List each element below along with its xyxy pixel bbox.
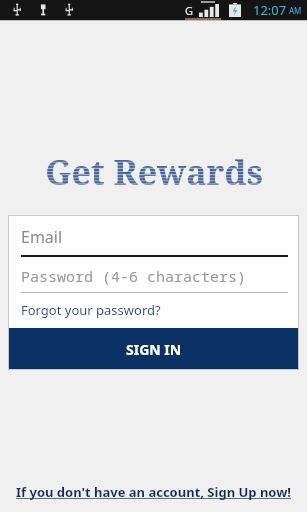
button[interactable]: Password (4-6 characters) — [8, 266, 299, 293]
staticText: If you don't have an account, Sign Up no… — [16, 483, 291, 501]
staticText: Forgot your password? — [21, 301, 161, 319]
staticText: AM — [289, 5, 302, 16]
button[interactable]: If you don't have an account, Sign Up no… — [0, 477, 307, 512]
staticText: Password (4-6 characters) — [21, 266, 247, 286]
staticText: 12:07 — [253, 1, 287, 19]
button[interactable]: Email — [8, 215, 299, 257]
button[interactable]: SIGN IN — [8, 328, 299, 370]
staticText: Get Rewards — [45, 149, 263, 195]
staticText: G — [185, 3, 194, 18]
staticText: Email — [21, 226, 63, 248]
staticText: SIGN IN — [126, 340, 182, 359]
button[interactable]: Forgot your password? — [8, 293, 299, 328]
